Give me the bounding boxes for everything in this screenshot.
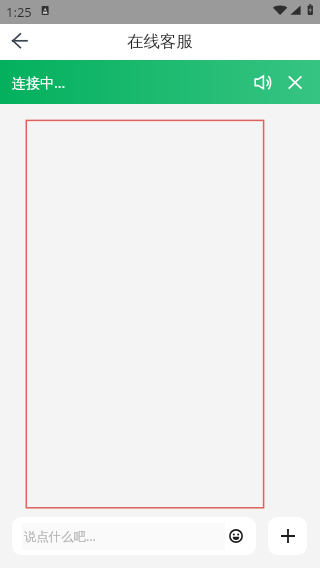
button[interactable]: Emoji xyxy=(225,525,247,547)
button[interactable]: Sound xyxy=(249,68,277,96)
staticText: 说点什么吧... xyxy=(24,528,96,545)
button[interactable]: Close xyxy=(281,68,309,96)
staticText: 连接中... xyxy=(12,73,66,92)
staticText: 1:25 xyxy=(6,3,32,21)
button[interactable]: Back xyxy=(0,24,36,60)
button[interactable]: 说点什么吧... xyxy=(12,517,256,555)
button[interactable]: Add xyxy=(268,517,307,555)
staticText: 在线客服 xyxy=(127,31,193,52)
